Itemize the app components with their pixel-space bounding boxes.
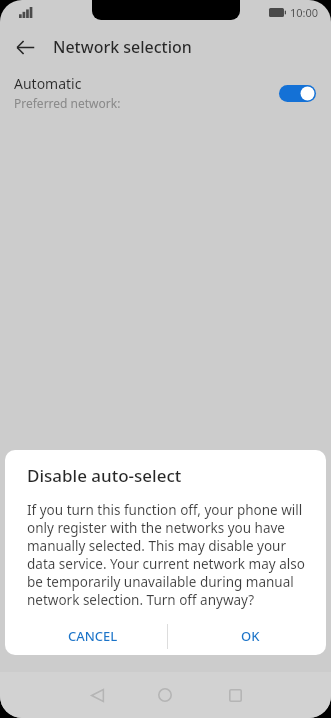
staticText: CANCEL: [68, 627, 118, 645]
button[interactable]: OK: [183, 619, 318, 653]
button[interactable]: Recent apps: [219, 679, 251, 711]
staticText: 10:00: [290, 5, 319, 20]
button[interactable]: CANCEL: [25, 619, 160, 653]
button[interactable]: Automatic: [0, 68, 331, 116]
button[interactable]: Automatic network selection toggle: [279, 85, 316, 102]
staticText: Automatic: [14, 74, 82, 93]
button[interactable]: Home: [149, 679, 181, 711]
button[interactable]: Back: [81, 679, 113, 711]
staticText: OK: [241, 627, 260, 645]
staticText: Network selection: [53, 36, 192, 58]
staticText: If you turn this function off, your phon…: [27, 501, 308, 609]
staticText: Preferred network:: [14, 95, 121, 111]
button[interactable]: Back: [9, 31, 41, 63]
staticText: Disable auto-select: [27, 464, 182, 487]
